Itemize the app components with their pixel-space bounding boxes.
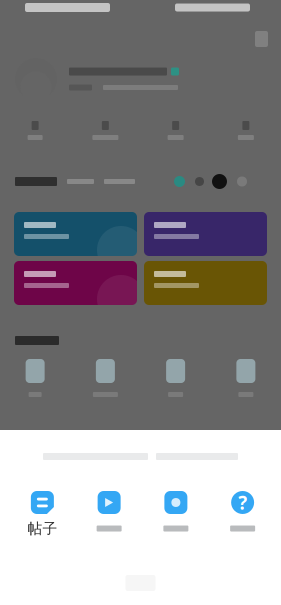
button[interactable]: Card: [144, 261, 267, 305]
button[interactable]: Card: [14, 212, 137, 256]
button[interactable]: Stat: [0, 121, 70, 140]
staticText: ?: [238, 490, 247, 515]
button[interactable]: Stat: [211, 121, 281, 140]
button[interactable]: Card: [144, 212, 267, 256]
button[interactable]: Stat: [140, 121, 211, 140]
button[interactable]: Stat: [70, 121, 140, 140]
button[interactable]: Share option: [76, 491, 143, 535]
button[interactable]: App shortcut: [211, 359, 281, 397]
staticText: 帖子: [27, 519, 57, 537]
button[interactable]: Card: [14, 261, 137, 305]
button[interactable]: 帖子: [9, 491, 76, 535]
button[interactable]: More: [250, 26, 273, 52]
button[interactable]: App shortcut: [0, 359, 70, 397]
button[interactable]: Share option: [142, 491, 209, 535]
button[interactable]: Share option: [209, 491, 276, 535]
button[interactable]: App shortcut: [70, 359, 140, 397]
button[interactable]: App shortcut: [140, 359, 211, 397]
